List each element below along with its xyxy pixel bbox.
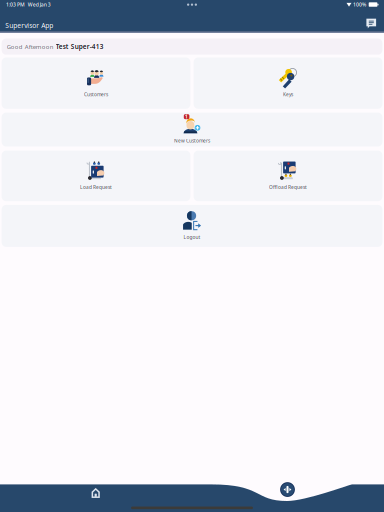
staticText: 1	[185, 114, 188, 120]
staticText: Keys	[283, 91, 293, 98]
staticText: Wed Jan 3	[28, 1, 51, 8]
staticText: New Customers	[174, 137, 210, 144]
button[interactable]: Good Afternoon	[2, 38, 382, 55]
staticText: Offload Request	[269, 184, 307, 190]
staticText: Logout	[183, 234, 200, 240]
button[interactable]: 1	[2, 113, 382, 146]
staticText: 1:03 PM	[6, 1, 25, 8]
staticText: 100%	[353, 1, 366, 8]
staticText: Supervisor App	[5, 21, 53, 30]
button[interactable]: Transfer	[277, 479, 297, 499]
staticText: Test Super-413	[56, 42, 104, 51]
button[interactable]: Logout	[2, 205, 382, 247]
button[interactable]: Home	[86, 483, 106, 503]
button[interactable]: Keys	[194, 57, 382, 109]
button[interactable]: Offload Request	[194, 151, 382, 201]
button[interactable]: Customers	[2, 57, 190, 109]
staticText: Customers	[84, 91, 108, 98]
staticText: Load Request	[80, 184, 112, 190]
staticText: Good Afternoon	[7, 43, 56, 51]
button[interactable]: Load Request	[2, 151, 190, 201]
button[interactable]: Messages	[363, 17, 380, 31]
